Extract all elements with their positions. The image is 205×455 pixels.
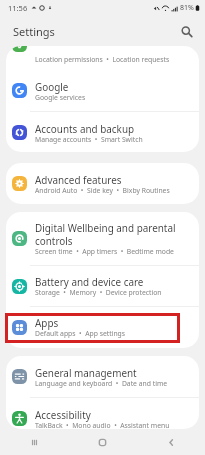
button[interactable]: Advanced features: [6, 163, 199, 204]
staticText: Screen time • App timers • Bedtime mode: [35, 247, 174, 256]
staticText: Battery and device care: [35, 275, 144, 288]
staticText: Default apps • App settings: [35, 329, 126, 338]
button[interactable]: Search: [176, 21, 197, 42]
staticText: Advanced features: [35, 173, 122, 186]
staticText: Google: [35, 80, 69, 93]
staticText: 11:56: [8, 3, 28, 13]
staticText: Accessibility: [35, 408, 91, 421]
staticText: Storage • Memory • Device protection: [35, 288, 162, 297]
button[interactable]: Recent apps: [21, 429, 47, 455]
staticText: TalkBack • Mono audio • Assistant menu: [35, 421, 170, 429]
staticText: Digital Wellbeing and parental: [35, 221, 176, 234]
staticText: Apps: [35, 316, 59, 329]
button[interactable]: Battery and device care: [6, 266, 199, 306]
staticText: Manage accounts • Smart Switch: [35, 135, 143, 144]
button[interactable]: General management: [6, 356, 199, 397]
staticText: Accounts and backup: [35, 122, 135, 135]
staticText: Android Auto • Side key • Bixby Routines: [35, 186, 170, 195]
button[interactable]: Digital Wellbeing and parental: [6, 212, 199, 265]
button[interactable]: Google: [6, 70, 199, 111]
button[interactable]: Home: [89, 429, 115, 455]
staticText: 81%: [180, 3, 194, 13]
staticText: Settings: [13, 24, 55, 39]
staticText: Location permissions • Location requests: [35, 55, 170, 64]
staticText: controls: [35, 234, 73, 247]
button[interactable]: Location permissions • Location requests: [6, 46, 199, 70]
button[interactable]: Back: [158, 429, 184, 455]
button[interactable]: Apps: [6, 307, 199, 347]
staticText: Google services: [35, 93, 86, 102]
button[interactable]: Accessibility: [6, 398, 199, 429]
staticText: General management: [35, 366, 137, 379]
staticText: Language and keyboard • Date and time: [35, 379, 168, 388]
button[interactable]: Accounts and backup: [6, 112, 199, 152]
